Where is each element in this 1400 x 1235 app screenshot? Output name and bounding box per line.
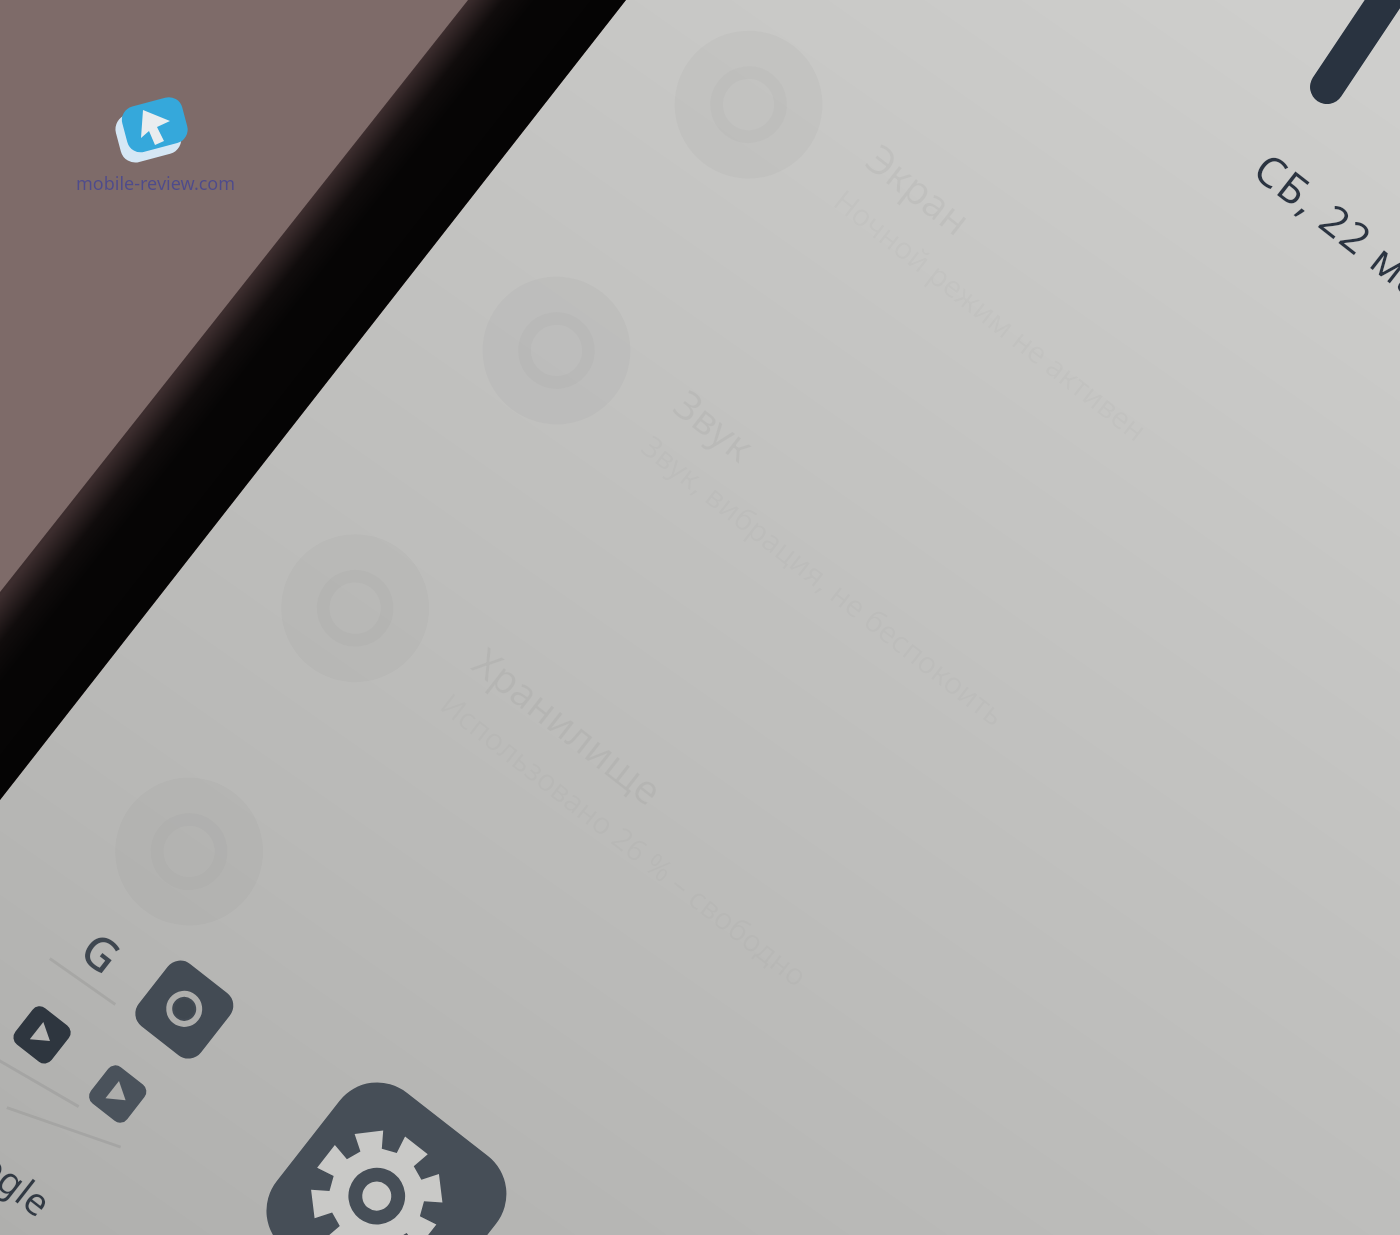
button[interactable]: Play Movies [78,1060,158,1140]
button[interactable]: Play Store [4,1000,84,1080]
button[interactable]: Settings [228,1050,528,1235]
button[interactable]: Date, Saturday 22 May [1190,120,1400,280]
button[interactable]: Camera [126,950,244,1068]
button[interactable]: Google search [46,920,156,1012]
button[interactable]: Android settings screen photo [0,0,1400,1235]
